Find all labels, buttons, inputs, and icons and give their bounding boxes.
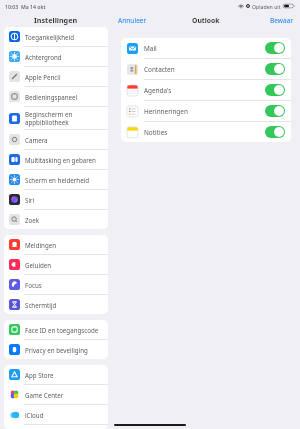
button[interactable]: App Store: [4, 365, 108, 384]
staticText: Beginscherm en: [25, 110, 73, 118]
staticText: Focus: [25, 281, 42, 289]
staticText: Contacten: [144, 65, 175, 74]
staticText: Face ID en toegangscode: [25, 326, 99, 334]
button[interactable]: Bewaar: [264, 13, 300, 28]
button[interactable]: Toegankelijkheid: [4, 27, 108, 46]
button[interactable]: Privacy en beveiliging: [4, 340, 108, 359]
button[interactable]: Herinneringen: [121, 101, 291, 121]
staticText: Achtergrond: [25, 53, 62, 61]
button[interactable]: Apple Pencil: [4, 67, 108, 86]
staticText: Outlook: [192, 16, 220, 25]
staticText: Toegankelijkheid: [25, 33, 74, 41]
staticText: App Store: [25, 371, 54, 379]
button[interactable]: Annuleer: [112, 13, 153, 28]
button[interactable]: Aan: [265, 84, 285, 96]
button[interactable]: Aan: [265, 105, 285, 117]
staticText: Agenda's: [144, 86, 172, 95]
button[interactable]: Notities: [121, 122, 291, 142]
button[interactable]: Contacten: [121, 59, 291, 79]
button[interactable]: Meldingen: [4, 235, 108, 254]
staticText: Mail: [144, 44, 157, 53]
staticText: Game Center: [25, 391, 64, 399]
button[interactable]: Camera: [4, 130, 108, 149]
button[interactable]: Game Center: [4, 385, 108, 404]
staticText: appbibliotheek: [25, 118, 69, 126]
staticText: Meldingen: [25, 241, 57, 249]
staticText: Siri: [25, 196, 35, 204]
staticText: Multitasking en gebaren: [25, 156, 96, 164]
button[interactable]: Multitasking en gebaren: [4, 150, 108, 169]
staticText: 10:03 Ma 14 okt: [5, 3, 46, 10]
staticText: Privacy en beveiliging: [25, 346, 88, 354]
button[interactable]: Agenda's: [121, 80, 291, 100]
button[interactable]: Zoek: [4, 210, 108, 229]
button[interactable]: Aan: [265, 42, 285, 54]
button[interactable]: iCloud: [4, 405, 108, 424]
staticText: Camera: [25, 136, 48, 144]
staticText: Bewaar: [270, 16, 294, 25]
button[interactable]: Aan: [265, 126, 285, 138]
button[interactable]: Scherm en helderheid: [4, 170, 108, 189]
staticText: Bedieningspaneel: [25, 93, 78, 101]
button[interactable]: Siri: [4, 190, 108, 209]
button[interactable]: Bedieningspaneel: [4, 87, 108, 106]
staticText: Herinneringen: [144, 107, 188, 116]
staticText: Geluiden: [25, 261, 52, 269]
button[interactable]: Achtergrond: [4, 47, 108, 66]
staticText: iCloud: [25, 411, 44, 419]
button[interactable]: Face ID en toegangscode: [4, 320, 108, 339]
button[interactable]: Focus: [4, 275, 108, 294]
staticText: Apple Pencil: [25, 73, 61, 81]
staticText: Zoek: [25, 216, 40, 224]
button[interactable]: Aan: [265, 63, 285, 75]
staticText: Notities: [144, 128, 168, 137]
button[interactable]: Schermtijd: [4, 295, 108, 314]
button[interactable]: Beginscherm en: [4, 107, 108, 129]
staticText: Schermtijd: [25, 301, 57, 309]
button[interactable]: Geluiden: [4, 255, 108, 274]
staticText: Opladen uit: [252, 3, 281, 10]
button[interactable]: Mail: [121, 38, 291, 58]
staticText: Scherm en helderheid: [25, 176, 90, 184]
staticText: Instellingen: [34, 15, 78, 25]
staticText: Annuleer: [118, 16, 147, 25]
